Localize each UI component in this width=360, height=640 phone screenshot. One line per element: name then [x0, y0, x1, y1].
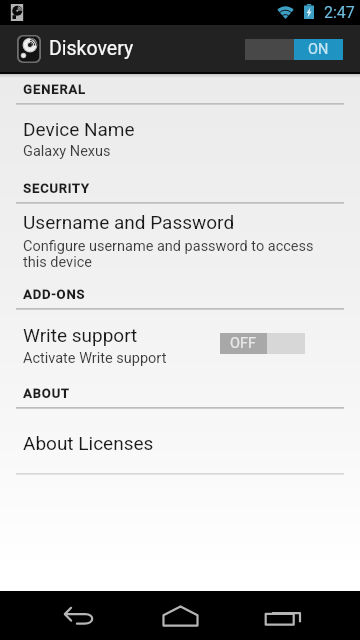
button[interactable]: Home — [130, 591, 230, 640]
staticText: Configure username and password to acces… — [23, 238, 321, 271]
staticText: Activate Write support — [23, 350, 273, 367]
staticText: OFF — [230, 335, 257, 352]
button[interactable]: About Licenses — [0, 432, 360, 454]
button[interactable]: Write support — [0, 324, 360, 367]
staticText: ON — [308, 41, 329, 58]
button[interactable]: Toggle, on — [245, 39, 343, 60]
button[interactable]: Device Name — [0, 118, 360, 140]
staticText: ADD-ONS — [23, 287, 85, 302]
button[interactable]: Toggle, off — [220, 333, 305, 354]
staticText: ABOUT — [23, 386, 70, 401]
button[interactable]: Write support — [0, 324, 360, 346]
staticText: SECURITY — [23, 181, 90, 196]
button[interactable]: Recent apps — [232, 591, 332, 640]
staticText: Diskovery — [49, 37, 134, 60]
button[interactable]: Username and Password — [0, 211, 360, 233]
staticText: 2:47 — [324, 3, 355, 22]
staticText: GENERAL — [23, 82, 86, 97]
button[interactable]: Back — [30, 591, 126, 640]
staticText: Galaxy Nexus — [23, 143, 323, 160]
